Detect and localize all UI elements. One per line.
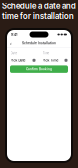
staticText: Pick Time bbox=[42, 58, 58, 62]
staticText: Confirm Booking bbox=[26, 67, 52, 71]
staticText: Date bbox=[10, 51, 17, 55]
staticText: Pick Date bbox=[10, 58, 25, 62]
staticText: Schedule a date and bbox=[2, 1, 76, 11]
staticText: time for installation bbox=[2, 11, 74, 21]
staticText: Schedule Installation bbox=[22, 41, 56, 45]
button[interactable]: Date bbox=[10, 51, 36, 62]
button[interactable]: Time bbox=[42, 51, 68, 62]
staticText: 9:41 bbox=[11, 32, 17, 37]
staticText: ‹ bbox=[10, 39, 12, 47]
staticText: Time bbox=[42, 51, 49, 55]
button[interactable]: Back bbox=[9, 40, 13, 46]
button[interactable]: Confirm Booking bbox=[10, 65, 68, 73]
